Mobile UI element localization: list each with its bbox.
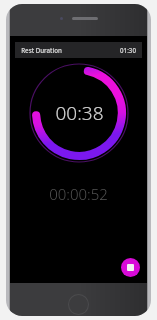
staticText: Rest Duration [21, 46, 62, 54]
staticText: 01:30 [120, 46, 136, 54]
staticText: 00:38 [55, 100, 104, 126]
button[interactable]: Home [69, 295, 88, 314]
staticText: 00:00:52 [49, 184, 108, 204]
button[interactable]: Rest Duration [15, 42, 142, 58]
button[interactable]: Stop timer [121, 258, 140, 277]
